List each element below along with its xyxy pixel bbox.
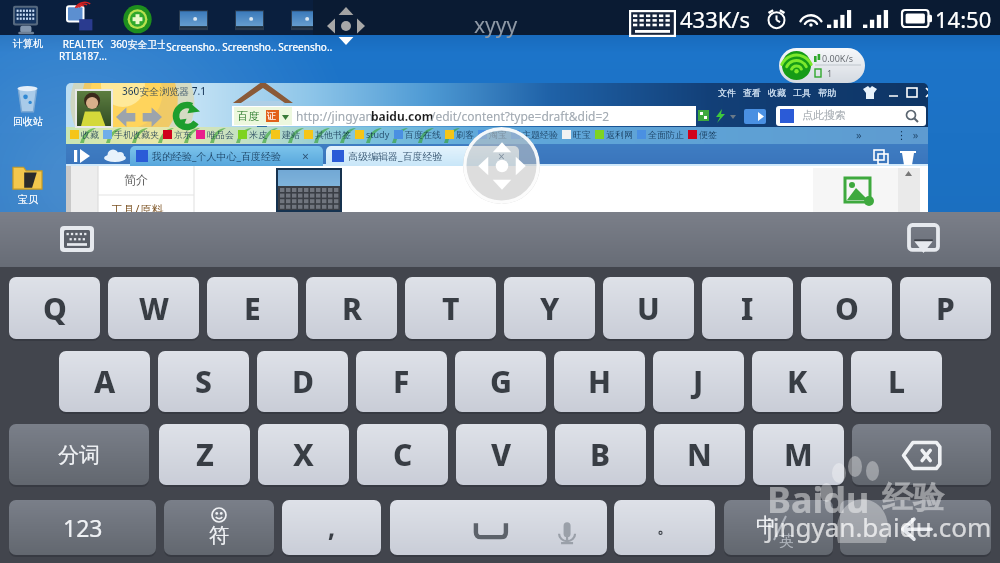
button[interactable]: P <box>900 277 991 339</box>
staticText: 计算机 <box>13 37 43 50</box>
staticText: 我的经验_个人中心_百度经验 <box>152 149 281 163</box>
staticText: 淘宝 <box>489 129 507 140</box>
button[interactable] <box>840 500 991 555</box>
button[interactable]: C <box>357 424 448 485</box>
button[interactable]: S <box>158 351 249 412</box>
button[interactable]: Wi <box>55 82 110 129</box>
button[interactable]: B <box>555 424 646 485</box>
button[interactable]: 。 <box>614 500 715 555</box>
button[interactable]: 点此搜索 <box>776 106 926 126</box>
staticText: 全面防止 <box>648 129 684 140</box>
button[interactable]: 百度 <box>232 106 696 126</box>
button[interactable]: X <box>258 424 349 485</box>
staticText: 0.00K/s <box>822 52 854 64</box>
button[interactable]: Navigation pad <box>463 127 540 204</box>
staticText: O <box>835 288 859 329</box>
button[interactable]: 便签 <box>688 129 717 140</box>
button[interactable]: K <box>752 351 843 412</box>
button[interactable] <box>852 424 991 485</box>
staticText: 高级编辑器_百度经验 <box>348 149 443 163</box>
button[interactable]: W <box>108 277 199 339</box>
button[interactable]: D <box>257 351 348 412</box>
button[interactable]: 主题经验 <box>511 129 558 140</box>
staticText: 宝贝 <box>18 193 38 206</box>
button[interactable]: 暴 <box>55 160 110 206</box>
button[interactable]: M <box>753 424 844 485</box>
staticText: J <box>693 361 704 402</box>
button[interactable]: Q <box>9 277 100 339</box>
button[interactable]: Screensho… <box>222 7 277 54</box>
button[interactable]: L <box>851 351 942 412</box>
staticText: 文件 查看 收藏 工具 帮助 <box>718 86 837 98</box>
button[interactable]: 其他书签 <box>304 129 351 140</box>
button[interactable]: I <box>702 277 793 339</box>
button[interactable]: D-pad <box>326 6 366 46</box>
button[interactable]: A <box>59 351 150 412</box>
staticText: 米皮 <box>249 129 267 140</box>
staticText: 360安全浏览器 7.1 <box>122 84 206 98</box>
button[interactable]: 唯品会 <box>196 129 234 140</box>
button[interactable]: 刷客 <box>445 129 474 140</box>
staticText: U <box>637 288 660 329</box>
button[interactable]: 建站 <box>271 129 300 140</box>
button[interactable]: 分词 <box>9 424 149 485</box>
button[interactable]: 百度在线 <box>394 129 441 140</box>
staticText: 唯品会 <box>207 129 234 140</box>
button[interactable]: , <box>282 500 381 555</box>
staticText: Baidu <box>767 475 870 524</box>
button[interactable] <box>390 500 607 555</box>
button[interactable]: Y <box>504 277 595 339</box>
button[interactable]: 返利网 <box>595 129 633 140</box>
button[interactable]: O <box>801 277 892 339</box>
button[interactable]: F <box>356 351 447 412</box>
button[interactable]: 我的经验_个人中心_百度经验 <box>130 146 323 166</box>
staticText: D <box>292 361 314 402</box>
staticText: H <box>588 361 611 402</box>
button[interactable]: U <box>603 277 694 339</box>
staticText: http://jingyan. <box>296 108 377 124</box>
button[interactable]: 计算机 <box>0 4 55 50</box>
button[interactable]: J <box>653 351 744 412</box>
staticText: × <box>302 148 309 164</box>
staticText: W <box>139 288 169 329</box>
button[interactable]: 手机收藏夹 <box>103 129 159 140</box>
button[interactable]: 淘宝 <box>478 129 507 140</box>
staticText: xyyy <box>474 11 518 40</box>
staticText: 旺宝 <box>573 129 591 140</box>
button[interactable]: 京东 <box>163 129 192 140</box>
button[interactable]: study <box>355 128 390 140</box>
staticText: , <box>328 511 336 544</box>
button[interactable]: H <box>554 351 645 412</box>
button[interactable]: T <box>405 277 496 339</box>
staticText: 工具/原料 <box>111 201 164 212</box>
button[interactable]: Screensho… <box>166 7 221 54</box>
button[interactable]: E <box>207 277 298 339</box>
button[interactable]: 米皮 <box>238 129 267 140</box>
button[interactable]: 中 <box>724 500 833 555</box>
button[interactable]: 收藏 <box>70 129 99 140</box>
staticText: C <box>393 434 413 475</box>
staticText: 分词 <box>58 442 100 468</box>
staticText: B <box>590 434 611 475</box>
button[interactable]: 0.00K/s <box>779 48 865 83</box>
button[interactable]: 回收站 <box>0 82 55 128</box>
button[interactable]: N <box>654 424 745 485</box>
staticText: REALTEK RTL8187… <box>59 37 107 63</box>
button[interactable]: Switch keyboard <box>53 224 100 254</box>
staticText: 百度在线 <box>405 129 441 140</box>
button[interactable]: Z <box>159 424 250 485</box>
button[interactable]: V <box>456 424 547 485</box>
button[interactable]: 360安全卫士 <box>110 4 165 51</box>
button[interactable]: 123 <box>9 500 156 555</box>
button[interactable]: R <box>306 277 397 339</box>
button[interactable]: 全面防止 <box>637 129 684 140</box>
staticText: Screensho… <box>222 40 277 54</box>
button[interactable]: 符 <box>164 500 274 555</box>
button[interactable]: 宝贝 <box>0 160 55 206</box>
button[interactable]: 旺宝 <box>562 129 591 140</box>
button[interactable]: G <box>455 351 546 412</box>
button[interactable]: Screensho… <box>278 7 333 54</box>
button[interactable]: REALTEK RTL8187… <box>55 4 110 63</box>
button[interactable]: 高级编辑器_百度经验 <box>326 146 519 166</box>
button[interactable]: Hide keyboard <box>900 223 947 254</box>
